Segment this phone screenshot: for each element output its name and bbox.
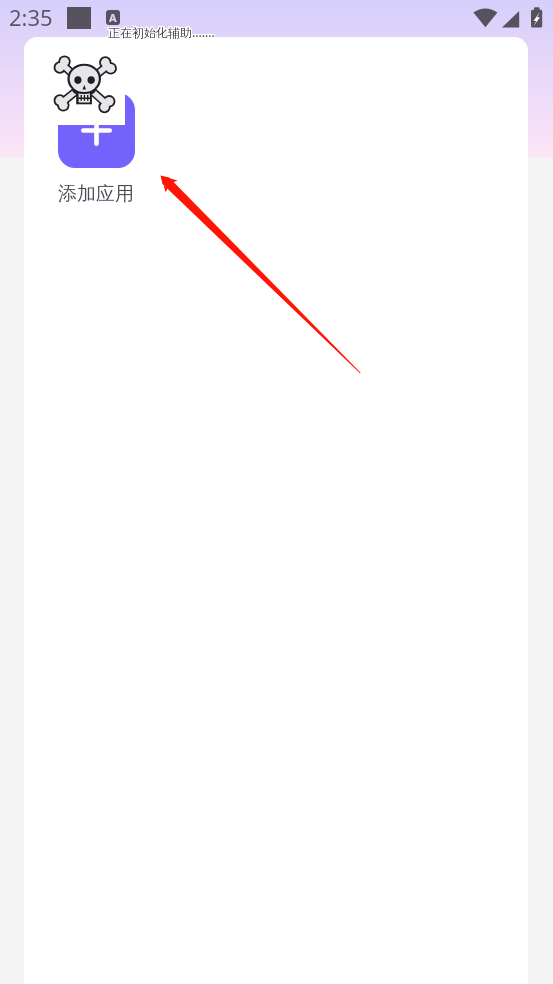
staticText: 正在初始化辅助.......: [109, 25, 216, 41]
staticText: 2:35: [9, 2, 53, 32]
staticText: 添加应用: [58, 182, 134, 206]
staticText: 正在初始化辅助.......: [108, 23, 215, 39]
staticText: 正在初始化辅助.......: [109, 24, 216, 40]
staticText: A: [109, 10, 117, 25]
button[interactable]: 添加应用: [58, 93, 135, 168]
staticText: 正在初始化辅助.......: [107, 24, 214, 40]
staticText: 正在初始化辅助.......: [109, 23, 216, 39]
staticText: 正在初始化辅助.......: [107, 23, 214, 39]
staticText: 正在初始化辅助.......: [108, 25, 215, 41]
staticText: 正在初始化辅助.......: [108, 24, 215, 40]
staticText: 正在初始化辅助.......: [107, 25, 214, 41]
